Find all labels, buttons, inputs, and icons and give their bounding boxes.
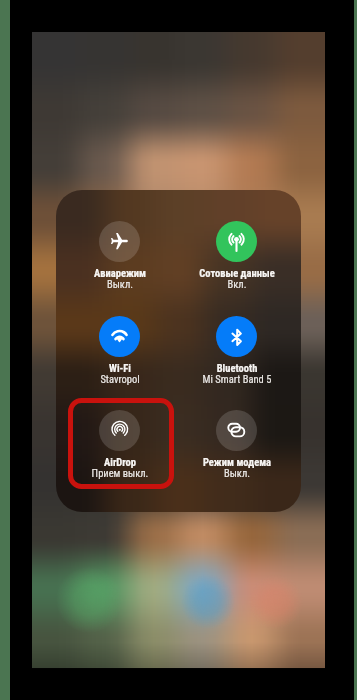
- other: Режим модема: [216, 410, 257, 451]
- button[interactable]: Авиарежим: [58, 219, 182, 275]
- other: Bluetooth: [216, 316, 257, 357]
- other: Сотовые данные: [216, 221, 257, 262]
- staticText: Bluetooth: [175, 362, 299, 374]
- staticText: Режим модема: [175, 456, 299, 468]
- staticText: Сотовые данные: [175, 267, 299, 279]
- staticText: Выкл.: [58, 278, 182, 290]
- staticText: Прием выкл.: [58, 467, 182, 479]
- other: AirDrop: [99, 410, 140, 451]
- button[interactable]: Bluetooth: [175, 314, 299, 370]
- staticText: AirDrop: [58, 456, 182, 468]
- staticText: Mi Smart Band 5: [175, 373, 299, 385]
- staticText: Stavropol: [58, 373, 182, 385]
- button[interactable]: Режим модема: [175, 408, 299, 464]
- other: Авиарежим: [99, 221, 140, 262]
- button[interactable]: Сотовые данные: [175, 219, 299, 275]
- button[interactable]: Wi-Fi: [58, 314, 182, 370]
- staticText: Авиарежим: [58, 267, 182, 279]
- staticText: Вкл.: [175, 278, 299, 290]
- staticText: Выкл.: [175, 467, 299, 479]
- other: Wi-Fi: [99, 316, 140, 357]
- staticText: Wi-Fi: [58, 362, 182, 374]
- button[interactable]: AirDrop: [58, 408, 182, 464]
